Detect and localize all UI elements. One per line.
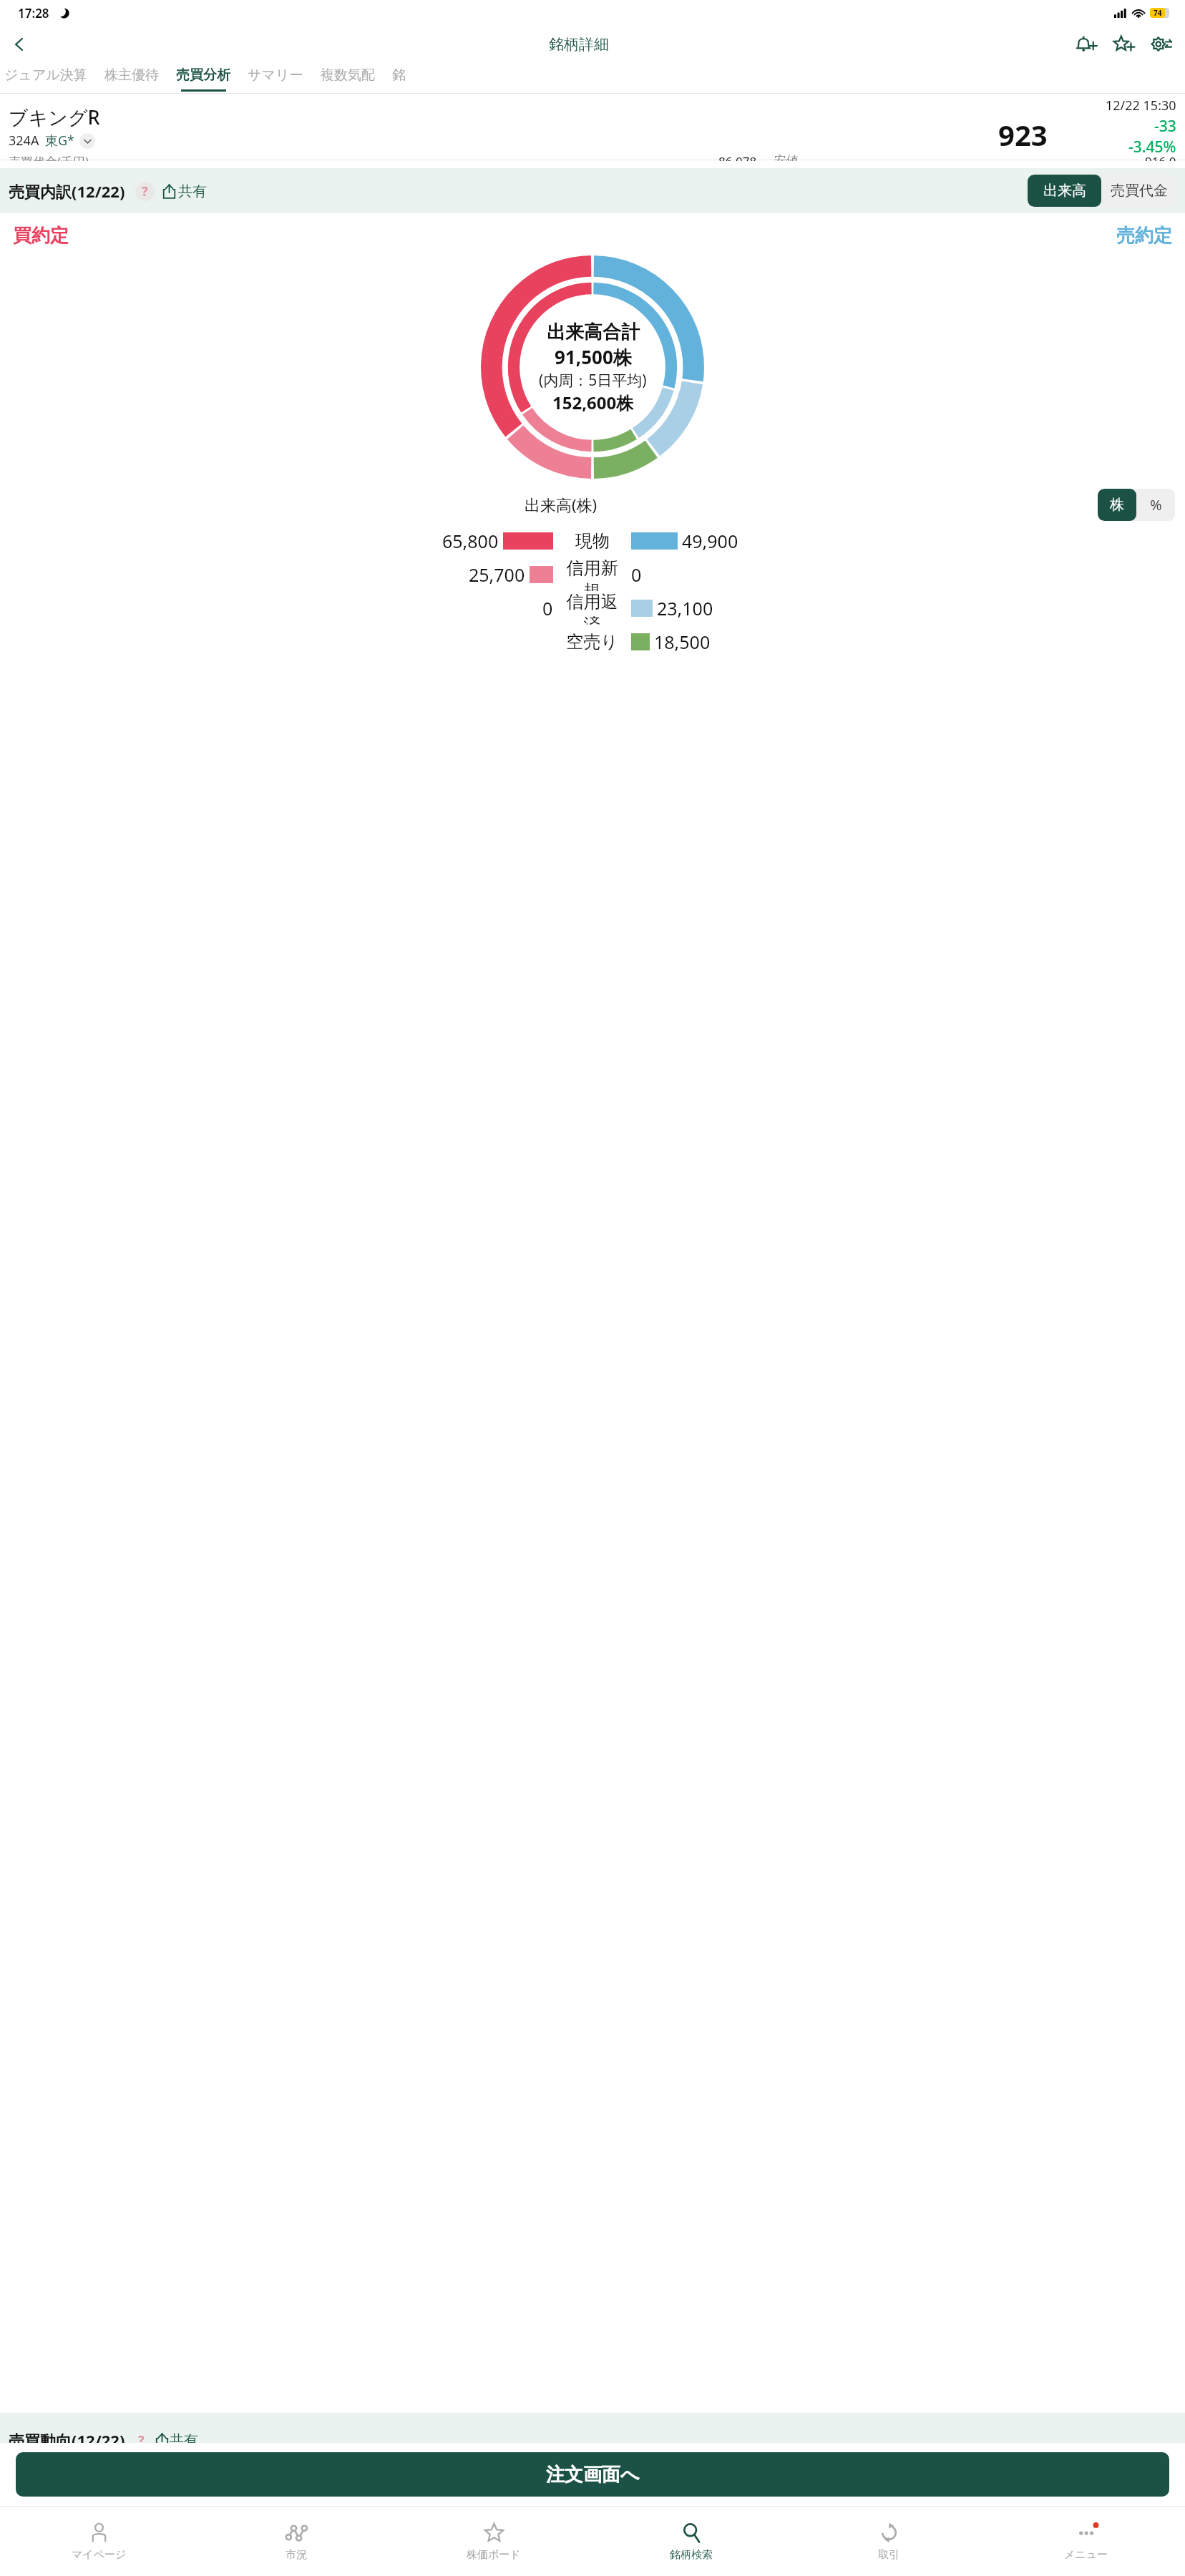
staticText: 出来高(株) <box>525 494 598 515</box>
button[interactable]: 空売り <box>0 625 1185 658</box>
staticText: 23,100 <box>657 596 713 620</box>
staticText: 324A <box>9 132 39 150</box>
staticText: マイページ <box>72 2548 127 2562</box>
button[interactable]: 売買分析 <box>167 63 239 92</box>
staticText: ジュアル決算 <box>4 67 87 84</box>
button[interactable]: 0 <box>0 591 1185 625</box>
staticText: ? <box>142 182 148 200</box>
staticText: 市況 <box>286 2548 307 2562</box>
staticText: 0 <box>631 562 642 587</box>
button[interactable]: 注文画面へ <box>16 2452 1169 2497</box>
staticText: 売約定 <box>1116 224 1172 248</box>
staticText: 売買代金(千円) <box>9 153 89 161</box>
staticText: 18,500 <box>654 630 711 654</box>
staticText: 出来高 <box>1043 182 1086 200</box>
staticText: 86,078 <box>718 153 757 161</box>
staticText: 0 <box>542 596 553 620</box>
button[interactable]: 25,700 <box>0 557 1185 591</box>
button[interactable]: Help <box>135 182 155 201</box>
button[interactable]: 出来高 <box>1028 175 1101 207</box>
button[interactable]: ブキングR <box>0 94 1185 160</box>
button[interactable]: サマリー <box>239 63 312 87</box>
button[interactable]: 株価ボード <box>395 2507 592 2576</box>
staticText: 株価ボード <box>467 2548 521 2562</box>
button[interactable]: 株主優待 <box>96 63 167 87</box>
staticText: 信用新規 <box>558 557 626 591</box>
button[interactable]: 銘 <box>384 63 414 87</box>
staticText: 共有 <box>178 182 207 200</box>
button[interactable]: 取引 <box>790 2507 987 2576</box>
staticText: 923 <box>998 115 1048 154</box>
staticText: 共有 <box>170 2431 198 2449</box>
staticText: 現物 <box>575 530 610 552</box>
button[interactable]: 65,800 <box>0 524 1185 557</box>
button[interactable]: 売買代金 <box>1101 175 1176 207</box>
button[interactable]: 共有 <box>162 182 207 200</box>
button[interactable]: % <box>1136 489 1175 521</box>
staticText: 取引 <box>878 2548 899 2562</box>
staticText: 売買動向(12/22) <box>9 2429 125 2451</box>
staticText: 売買分析 <box>176 67 230 84</box>
button[interactable]: Add alert <box>1068 26 1105 63</box>
staticText: 152,600株 <box>552 391 634 414</box>
button[interactable]: Back <box>3 28 36 61</box>
button[interactable]: マイページ <box>0 2507 197 2576</box>
staticText: % <box>1150 495 1162 514</box>
staticText: 注文画面へ <box>546 2463 640 2487</box>
staticText: 銘柄詳細 <box>549 35 609 54</box>
staticText: 銘柄検索 <box>670 2548 713 2562</box>
staticText: 49,900 <box>682 529 738 553</box>
staticText: 売買内訳(12/22) <box>9 180 125 202</box>
staticText: 買約定 <box>13 224 69 248</box>
button[interactable]: 複数気配 <box>312 63 384 87</box>
staticText: メニュー <box>1064 2548 1108 2562</box>
staticText: (内周：5日平均) <box>539 370 647 391</box>
staticText: サマリー <box>248 67 303 84</box>
staticText: 安値 <box>774 153 799 161</box>
button[interactable]: Settings <box>1142 26 1179 63</box>
staticText: 空売り <box>566 631 618 653</box>
button[interactable]: メニュー <box>987 2507 1185 2576</box>
staticText: 複数気配 <box>321 67 375 84</box>
staticText: -3.45% <box>1128 137 1176 157</box>
button[interactable]: 市況 <box>197 2507 395 2576</box>
staticText: 65,800 <box>442 529 499 553</box>
staticText: 銘 <box>392 67 406 84</box>
button[interactable]: Add to favourites <box>1105 26 1142 63</box>
staticText: ? <box>138 2431 145 2449</box>
staticText: 916.0 <box>1145 153 1176 161</box>
button[interactable]: 株 <box>1098 489 1136 521</box>
staticText: 91,500株 <box>555 344 632 370</box>
staticText: -33 <box>1154 116 1176 137</box>
staticText: ブキングR <box>9 104 100 130</box>
button[interactable]: 銘柄検索 <box>592 2507 790 2576</box>
staticText: 株 <box>1110 496 1124 514</box>
staticText: 株主優待 <box>104 67 159 84</box>
button[interactable]: ジュアル決算 <box>0 63 96 87</box>
staticText: 出来高合計 <box>547 321 640 344</box>
staticText: 17:28 <box>18 5 49 21</box>
staticText: 12/22 15:30 <box>1106 97 1176 114</box>
staticText: 信用返済 <box>558 591 626 625</box>
staticText: 25,700 <box>469 562 525 587</box>
staticText: 東G* <box>45 132 75 150</box>
staticText: 売買代金 <box>1111 182 1168 200</box>
staticText: 74 <box>1154 8 1162 18</box>
